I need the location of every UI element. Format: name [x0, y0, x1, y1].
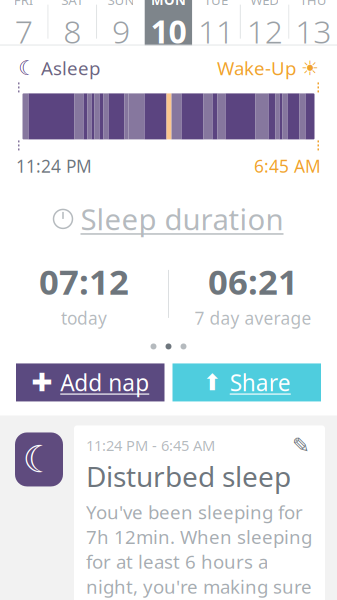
staticText: 12: [247, 10, 283, 52]
staticText: 06:21: [208, 258, 298, 304]
button[interactable]: ⬆: [172, 363, 321, 401]
staticText: SAT: [61, 0, 83, 9]
staticText: ✚: [31, 368, 52, 397]
button[interactable]: SUN: [97, 0, 145, 46]
staticText: ☀: [301, 57, 319, 79]
button[interactable]: FRI: [0, 0, 48, 46]
staticText: 11:24 PM: [16, 154, 92, 177]
staticText: 11:24 PM - 6:45 AM: [86, 435, 215, 455]
staticText: 7 day average: [194, 306, 311, 329]
staticText: today: [61, 306, 107, 329]
staticText: Asleep: [36, 56, 100, 80]
button[interactable]: THU: [289, 0, 337, 46]
staticText: 11: [198, 10, 234, 52]
staticText: 10: [150, 10, 186, 52]
staticText: ☾: [18, 57, 36, 79]
staticText: WED: [250, 0, 279, 9]
staticText: Wake-Up: [217, 56, 301, 80]
staticText: You've been sleeping for 7h 12min. When …: [86, 500, 312, 600]
staticText: 8: [63, 10, 81, 52]
staticText: 13: [295, 10, 331, 52]
staticText: 6:45 AM: [254, 154, 321, 177]
staticText: TUE: [204, 0, 228, 9]
button[interactable]: Edit: [289, 435, 313, 455]
staticText: 7: [15, 10, 33, 52]
staticText: Sleep duration: [80, 199, 283, 238]
staticText: FRI: [14, 0, 34, 9]
staticText: Add nap: [60, 367, 149, 397]
staticText: THU: [300, 0, 327, 9]
staticText: SUN: [107, 0, 134, 9]
staticText: 07:12: [39, 258, 129, 304]
staticText: ⬆: [203, 370, 222, 395]
staticText: ✎: [292, 433, 310, 457]
staticText: 9: [112, 10, 130, 52]
button[interactable]: TUE: [192, 0, 240, 46]
staticText: Disturbed sleep: [86, 457, 291, 495]
staticText: Share: [230, 367, 291, 397]
button[interactable]: SAT: [49, 0, 96, 46]
button[interactable]: MON: [145, 0, 192, 46]
button[interactable]: Sleep duration: [53, 193, 283, 244]
staticText: ☾: [22, 438, 55, 481]
staticText: MON: [151, 0, 186, 9]
staticText: ‹: [16, 0, 28, 10]
button[interactable]: ✚: [16, 363, 164, 401]
button[interactable]: WED: [241, 0, 288, 46]
